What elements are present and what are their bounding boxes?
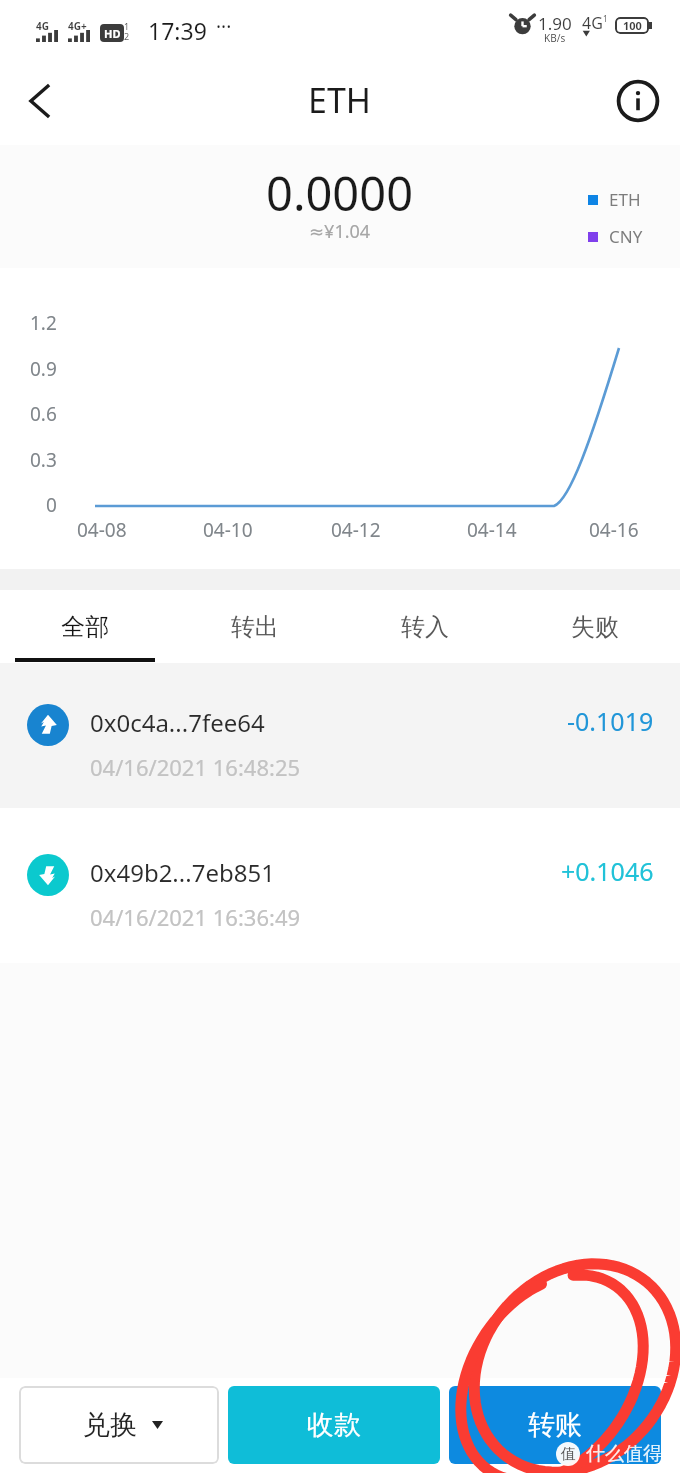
staticText: 04-16 [589, 517, 639, 543]
staticText: ETH [308, 77, 372, 123]
staticText: 0.3 [30, 447, 57, 473]
staticText: 04/16/2021 16:36:49 [90, 902, 301, 932]
staticText: 1 [124, 20, 130, 32]
button[interactable]: 失败 [510, 590, 680, 663]
button[interactable]: 收款 [228, 1386, 440, 1464]
button[interactable]: 0x49b2...7eb851 [0, 808, 680, 963]
staticText: 04-14 [467, 517, 517, 543]
staticText: HD [104, 26, 121, 41]
staticText: 收款 [307, 1408, 361, 1442]
staticText: 1 [603, 13, 608, 24]
button[interactable]: 转账 [449, 1386, 661, 1464]
staticText: 0.9 [30, 356, 57, 382]
button[interactable]: Back [8, 69, 72, 133]
staticText: 0.6 [30, 401, 57, 427]
button[interactable]: 兑换 [19, 1386, 219, 1464]
staticText: 0.0000 [266, 161, 414, 225]
staticText: 0x49b2...7eb851 [90, 856, 275, 889]
staticText: KB/s [544, 31, 566, 45]
staticText: 转出 [231, 612, 279, 642]
staticText: 0x0c4a...7fee64 [90, 706, 265, 739]
staticText: 2 [124, 30, 130, 42]
staticText: 转入 [401, 612, 449, 642]
staticText: 04-08 [77, 517, 127, 543]
staticText: 兑换 [83, 1408, 137, 1442]
staticText: 4G+ [68, 19, 87, 33]
staticText: 失败 [571, 612, 619, 642]
button[interactable]: 0x0c4a...7fee64 [0, 663, 680, 808]
staticText: 4G [582, 12, 603, 34]
staticText: 04-12 [331, 517, 381, 543]
staticText: 04/16/2021 16:48:25 [90, 752, 301, 782]
staticText: 04-10 [203, 517, 253, 543]
button[interactable]: 全部 [0, 590, 170, 663]
button[interactable]: Info [608, 71, 668, 131]
staticText: CNY [609, 225, 643, 248]
staticText: 值 [561, 1445, 576, 1464]
button[interactable]: 转出 [170, 590, 340, 663]
staticText: 什么值得买 [586, 1442, 680, 1466]
staticText: -0.1019 [567, 704, 654, 738]
staticText: 100 [623, 18, 642, 33]
button[interactable]: 转入 [340, 590, 510, 663]
staticText: ETH [609, 188, 641, 211]
staticText: 转账 [528, 1408, 582, 1442]
staticText: ··· [216, 14, 232, 40]
staticText: ≈¥1.04 [309, 219, 371, 244]
staticText: 全部 [61, 612, 109, 642]
staticText: 4G [36, 19, 49, 33]
staticText: 1.90 [538, 12, 572, 35]
staticText: 0 [46, 492, 57, 518]
staticText: 17:39 [148, 15, 207, 46]
staticText: 1.2 [30, 310, 57, 336]
staticText: +0.1046 [561, 854, 654, 888]
